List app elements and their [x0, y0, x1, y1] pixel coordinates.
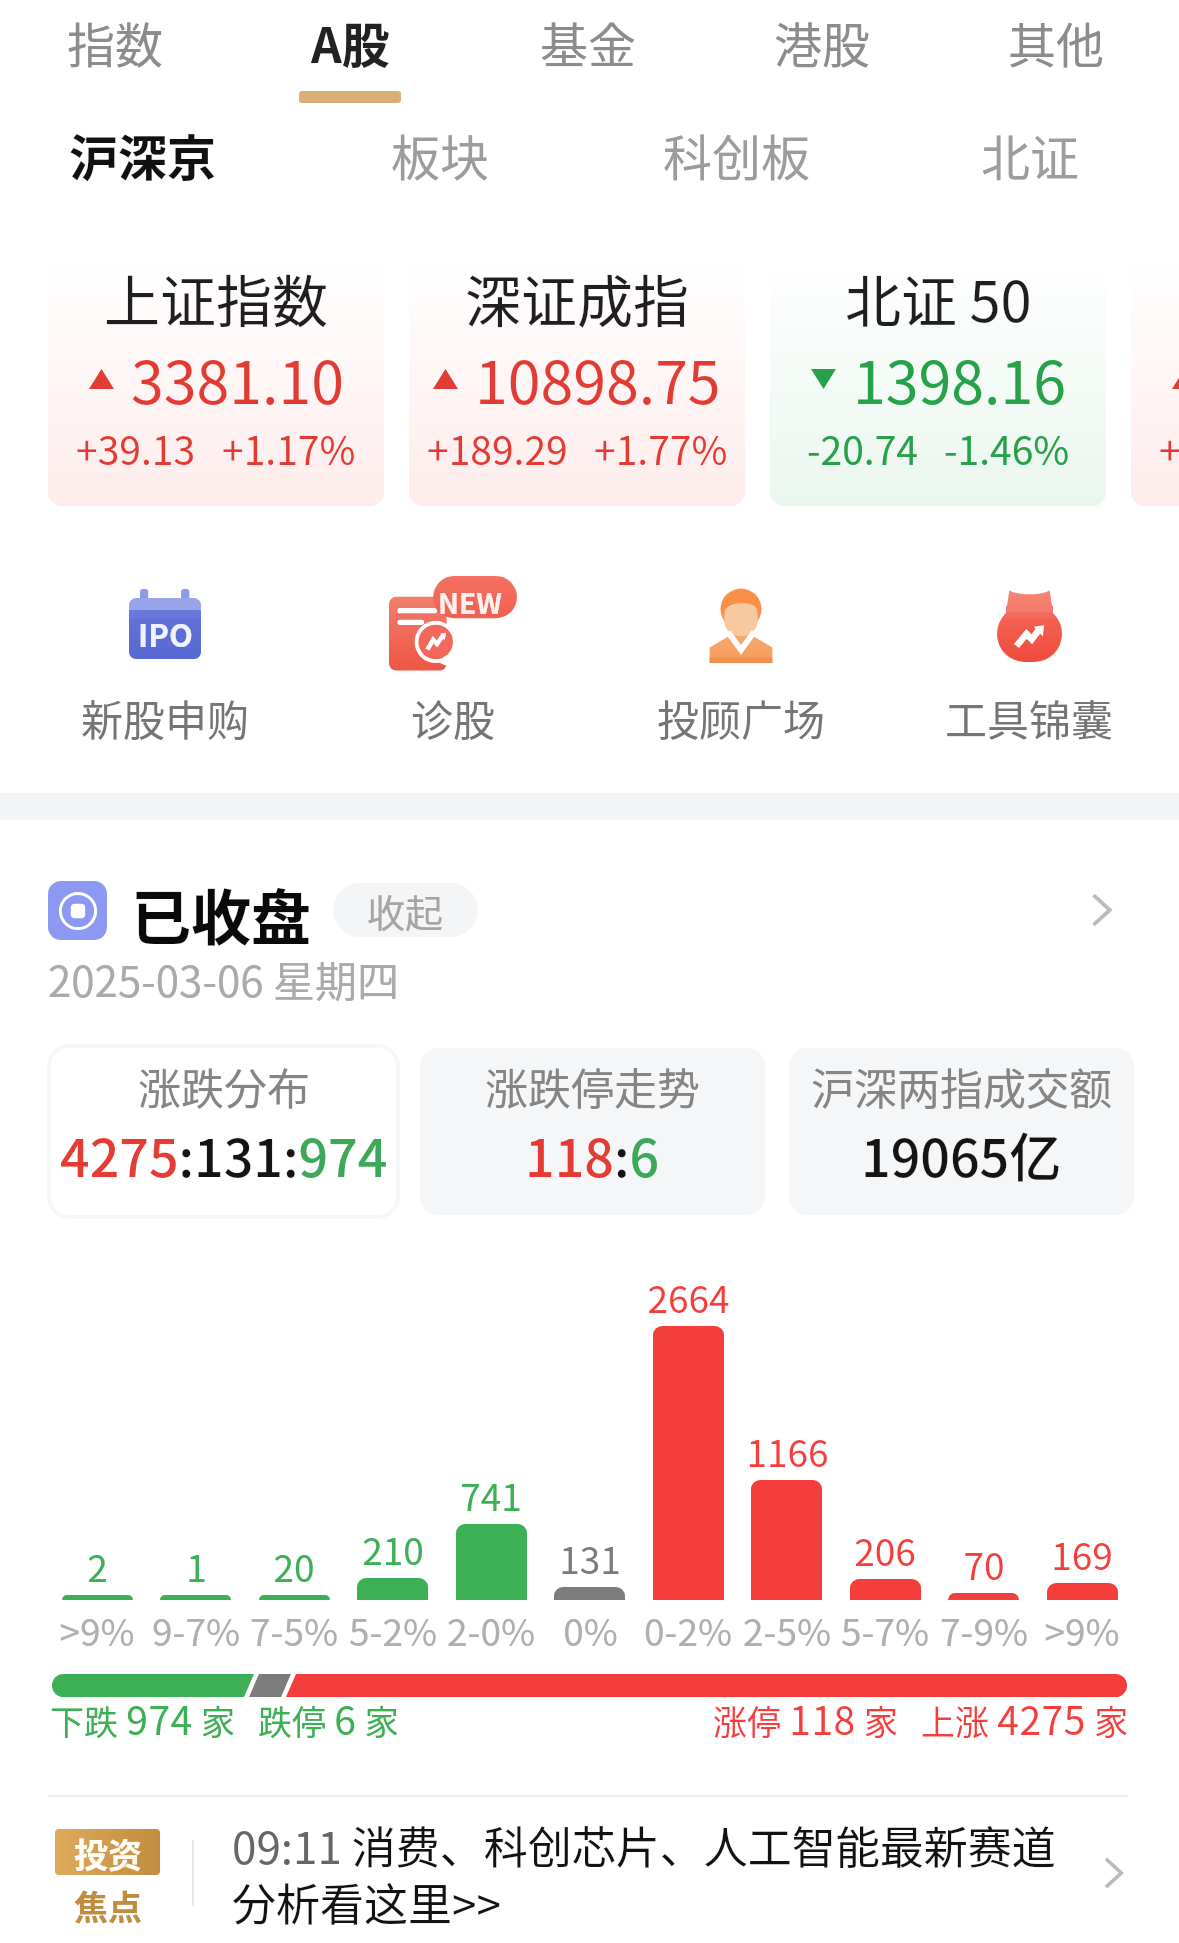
staticText: 1 — [186, 1539, 207, 1593]
staticText: 2-5% — [743, 1603, 831, 1657]
staticText: -20.74 — [807, 420, 918, 476]
staticText: 118:6 — [525, 1117, 660, 1192]
staticText: 169 — [1051, 1527, 1113, 1581]
staticText: 1398.16 — [853, 336, 1066, 421]
staticText: -1.46% — [944, 420, 1070, 476]
staticText: +189.29 — [427, 420, 568, 476]
staticText: 2 — [87, 1539, 108, 1593]
staticText: 下跌 974 家 — [50, 1690, 236, 1746]
staticText: 上证指数 — [104, 257, 328, 338]
staticText: 2664 — [647, 1270, 730, 1324]
button[interactable]: 沪深京 — [43, 112, 243, 208]
staticText: NEW — [438, 582, 502, 623]
staticText: 沪深京 — [69, 119, 217, 190]
staticText: 20 — [273, 1539, 315, 1593]
staticText: +1.77% — [594, 420, 728, 476]
staticText: 工具锦囊 — [945, 687, 1114, 748]
button[interactable]: 创业板指 — [1131, 236, 1179, 506]
staticText: 2025-03-06 星期四 — [48, 948, 400, 1009]
staticText: 131 — [559, 1531, 621, 1585]
staticText: 0-2% — [644, 1603, 732, 1657]
staticText: +44.44 — [1159, 420, 1179, 476]
staticText: 10898.75 — [475, 336, 721, 421]
staticText: 已收盘 — [131, 870, 311, 950]
staticText: 深证成指 — [465, 257, 689, 338]
staticText: A股 — [311, 7, 390, 77]
staticText: 北证 50 — [845, 257, 1032, 338]
button[interactable]: NEW — [309, 572, 597, 744]
staticText: 涨跌分布 — [138, 1055, 310, 1117]
button[interactable]: More — [1071, 880, 1131, 940]
staticText: 3381.10 — [131, 336, 344, 421]
staticText: 科创板 — [663, 119, 811, 190]
staticText: 收起 — [367, 883, 444, 937]
staticText: 1166 — [746, 1424, 829, 1478]
button[interactable]: 沪深两指成交额 — [789, 1048, 1134, 1215]
button[interactable]: 北证 50 — [770, 236, 1106, 506]
staticText: 投顾广场 — [657, 687, 826, 748]
staticText: 2-0% — [447, 1603, 535, 1657]
button[interactable]: 指数 — [37, 0, 193, 108]
staticText: 上涨 4275 家 — [921, 1690, 1129, 1746]
button[interactable]: 其他 — [978, 0, 1134, 108]
button[interactable]: 工具锦囊 — [885, 572, 1173, 744]
staticText: 跌停 6 家 — [258, 1690, 399, 1746]
staticText: 741 — [460, 1468, 522, 1522]
button[interactable]: 北证 — [930, 112, 1130, 208]
staticText: 206 — [854, 1523, 916, 1577]
staticText: >9% — [59, 1603, 135, 1657]
staticText: +1.17% — [222, 420, 356, 476]
staticText: 0% — [563, 1603, 618, 1657]
staticText: 板块 — [391, 119, 490, 190]
staticText: 诊股 — [411, 687, 496, 748]
button[interactable]: 涨跌分布 — [51, 1048, 396, 1215]
staticText: 5-7% — [841, 1603, 929, 1657]
staticText: 4275:131:974 — [60, 1117, 388, 1192]
button[interactable]: 板块 — [340, 112, 540, 208]
staticText: IPO — [138, 611, 193, 656]
staticText: 7-5% — [250, 1603, 338, 1657]
staticText: 港股 — [774, 7, 871, 77]
button[interactable]: 投顾广场 — [597, 572, 885, 744]
staticText: 涨跌停走势 — [485, 1055, 700, 1117]
staticText: 新股申购 — [81, 687, 250, 748]
button[interactable]: 港股 — [744, 0, 900, 108]
staticText: 指数 — [67, 7, 164, 77]
button[interactable]: IPO — [21, 572, 309, 744]
button[interactable]: 涨跌停走势 — [420, 1048, 765, 1215]
button[interactable]: 上证指数 — [48, 236, 384, 506]
button[interactable]: 科创板 — [637, 112, 837, 208]
staticText: 北证 — [981, 119, 1080, 190]
staticText: 涨停 118 家 — [713, 1690, 899, 1746]
staticText: >9% — [1044, 1603, 1120, 1657]
staticText: +39.13 — [76, 420, 196, 476]
staticText: 基金 — [540, 7, 637, 77]
staticText: 70 — [963, 1537, 1005, 1591]
button[interactable]: More news — [1085, 1845, 1141, 1901]
button[interactable]: 基金 — [510, 0, 666, 108]
staticText: 其他 — [1008, 7, 1105, 77]
staticText: 沪深两指成交额 — [811, 1055, 1112, 1117]
button[interactable]: A股 — [272, 0, 428, 108]
staticText: 5-2% — [349, 1603, 437, 1657]
staticText: 焦点 — [74, 1881, 142, 1930]
staticText: 09:11 消费、科创芯片、人工智能最新赛道分析看这里>> — [232, 1813, 1077, 1933]
staticText: 7-9% — [940, 1603, 1028, 1657]
staticText: 9-7% — [152, 1603, 240, 1657]
button[interactable]: 深证成指 — [409, 236, 745, 506]
staticText: 投资 — [74, 1829, 142, 1875]
staticText: 19065亿 — [861, 1117, 1062, 1192]
staticText: 210 — [362, 1522, 424, 1576]
button[interactable]: 收起 — [333, 883, 478, 937]
